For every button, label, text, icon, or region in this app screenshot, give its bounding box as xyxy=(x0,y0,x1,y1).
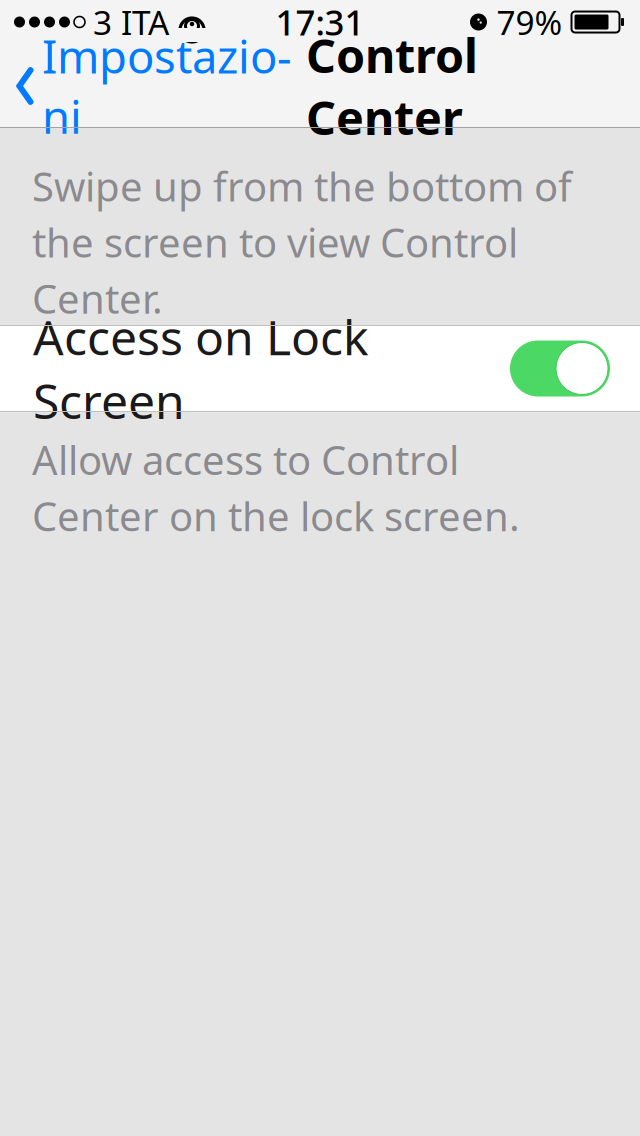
staticText: Access on Lock Screen xyxy=(33,305,369,432)
staticText: Control Center xyxy=(306,24,478,148)
staticText: 17:31 xyxy=(275,0,364,45)
staticText: 3 ITA xyxy=(93,0,169,44)
button[interactable]: Impostazioni xyxy=(0,55,298,117)
staticText: 79% xyxy=(496,0,562,44)
button[interactable]: Access on Lock Screen xyxy=(0,325,640,412)
staticText: Allow access to Control Center on the lo… xyxy=(32,433,520,542)
staticText: Swipe up from the bottom of the screen t… xyxy=(32,159,572,325)
staticText: Impostazioni xyxy=(42,26,292,146)
